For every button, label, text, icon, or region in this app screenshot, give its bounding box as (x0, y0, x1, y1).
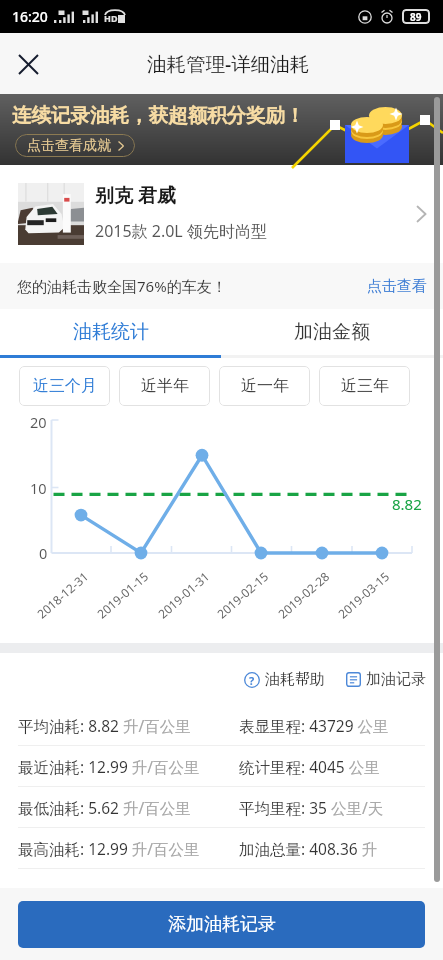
button[interactable]: 近三年 (319, 366, 410, 406)
button[interactable]: Close (6, 42, 50, 86)
staticText: 最高油耗: 12.99 升/百公里 (18, 838, 200, 859)
button[interactable]: 近半年 (119, 366, 210, 406)
staticText: 油耗统计 (73, 320, 149, 344)
staticText: 最低油耗: 5.62 升/百公里 (18, 797, 191, 818)
staticText: 统计里程: 4045 公里 (239, 756, 380, 777)
staticText: 点击查看 (367, 277, 427, 296)
staticText: 加油记录 (366, 670, 426, 689)
staticText: HD (104, 12, 118, 24)
staticText: 别克 君威 (95, 182, 176, 208)
staticText: 近半年 (141, 376, 189, 396)
button[interactable]: 加油金额 (221, 309, 443, 355)
button[interactable]: 点击查看 (367, 277, 427, 296)
staticText: 10 (30, 478, 47, 498)
staticText: 89 (410, 10, 422, 24)
staticText: 2015款 2.0L 领先时尚型 (95, 220, 267, 242)
staticText: 连续记录油耗，获超额积分奖励！ (12, 103, 305, 128)
staticText: 平均里程: 35 公里/天 (239, 797, 384, 818)
staticText: 加油金额 (294, 320, 370, 344)
button[interactable]: ? (244, 670, 325, 689)
staticText: 最近油耗: 12.99 升/百公里 (18, 756, 200, 777)
staticText: 加油总量: 408.36 升 (239, 838, 378, 859)
button[interactable]: 点击查看成就 (15, 134, 135, 157)
staticText: 添加油耗记录 (168, 913, 276, 936)
staticText: 0 (39, 543, 48, 563)
button[interactable]: 油耗统计 (0, 309, 221, 355)
staticText: 8.82 (392, 494, 422, 514)
staticText: 近三年 (341, 376, 389, 396)
staticText: 近三个月 (33, 376, 97, 396)
staticText: 您的油耗击败全国76%的车友！ (17, 276, 227, 296)
staticText: 油耗管理-详细油耗 (147, 50, 310, 77)
staticText: 2019-01-15 (93, 568, 151, 621)
staticText: 2019-02-28 (274, 568, 332, 621)
staticText: 2019-03-15 (334, 568, 392, 621)
button[interactable]: 连续记录油耗，获超额积分奖励！ (0, 94, 443, 165)
staticText: 16:20 (12, 7, 48, 26)
button[interactable]: 加油记录 (346, 670, 426, 689)
staticText: 油耗帮助 (265, 670, 325, 689)
button[interactable]: 近一年 (219, 366, 310, 406)
staticText: ? (249, 673, 255, 688)
staticText: 点击查看成就 (27, 137, 111, 155)
staticText: 20 (30, 412, 47, 432)
staticText: 2019-02-15 (213, 568, 271, 621)
staticText: 平均油耗: 8.82 升/百公里 (18, 715, 191, 736)
staticText: 表显里程: 43729 公里 (239, 715, 389, 736)
staticText: 2018-12-31 (33, 568, 91, 621)
button[interactable]: 近三个月 (19, 366, 110, 406)
staticText: 2019-01-31 (154, 568, 212, 621)
button[interactable]: 添加油耗记录 (18, 901, 425, 948)
staticText: 近一年 (241, 376, 289, 396)
button[interactable]: 别克 君威 (0, 165, 443, 263)
